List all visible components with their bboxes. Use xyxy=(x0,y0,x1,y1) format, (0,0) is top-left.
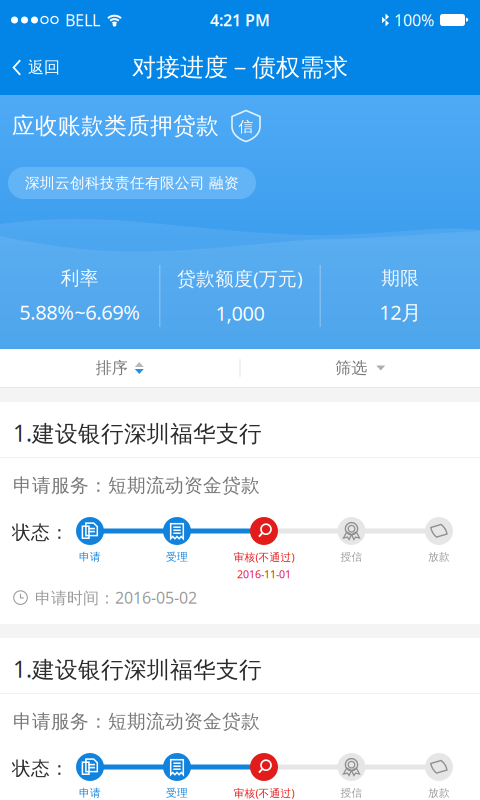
staticText: 返回 xyxy=(28,58,60,77)
staticText: 授信 xyxy=(340,786,362,799)
staticText: 筛选 xyxy=(335,358,367,378)
staticText: 深圳云创科技责任有限公司 融资 xyxy=(25,174,239,192)
staticText: 信 xyxy=(238,117,253,135)
staticText: 排序 xyxy=(96,358,128,378)
staticText: 4:21 PM xyxy=(210,9,270,31)
staticText: 5.88%~6.69% xyxy=(19,299,140,325)
staticText: BELL xyxy=(65,9,100,31)
button[interactable]: 1.建设银行深圳福华支行 xyxy=(0,402,480,624)
staticText: 申请服务：短期流动资金贷款 xyxy=(13,710,260,733)
staticText: 2016-11-01 xyxy=(237,567,291,581)
staticText: 对接进度－债权需求 xyxy=(132,53,348,82)
staticText: 1.建设银行深圳福华支行 xyxy=(13,654,262,684)
button[interactable]: 排序 xyxy=(0,349,239,387)
staticText: 申请时间：2016-05-02 xyxy=(35,587,197,608)
staticText: 贷款额度(万元) xyxy=(177,266,303,291)
staticText: 12月 xyxy=(379,299,421,325)
staticText: 审核(不通过) xyxy=(233,550,294,564)
staticText: 放款 xyxy=(428,550,450,563)
staticText: 期限 xyxy=(381,267,419,290)
button[interactable]: 返回 xyxy=(0,41,74,93)
staticText: 利率 xyxy=(61,267,99,290)
staticText: 1,000 xyxy=(215,300,264,326)
staticText: 受理 xyxy=(166,786,188,799)
staticText: 状态： xyxy=(12,757,69,780)
staticText: 应收账款类质押贷款 xyxy=(12,112,219,140)
button[interactable]: 筛选 xyxy=(240,349,480,387)
button[interactable]: 1.建设银行深圳福华支行 xyxy=(0,638,480,800)
staticText: 申请服务：短期流动资金贷款 xyxy=(13,474,260,497)
staticText: 受理 xyxy=(166,550,188,563)
staticText: 100% xyxy=(394,9,434,31)
staticText: 授信 xyxy=(340,550,362,563)
staticText: 申请 xyxy=(79,550,101,563)
staticText: 放款 xyxy=(428,786,450,799)
staticText: 1.建设银行深圳福华支行 xyxy=(13,418,262,448)
staticText: 状态： xyxy=(12,521,69,544)
staticText: 申请 xyxy=(79,786,101,799)
staticText: 审核(不通过) xyxy=(233,786,294,800)
